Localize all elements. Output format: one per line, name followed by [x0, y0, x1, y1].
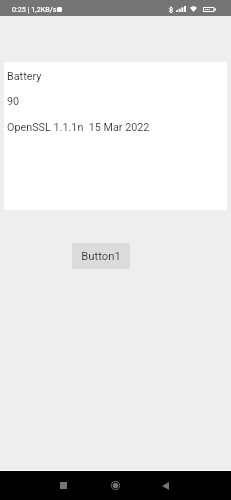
- staticText: OpenSSL 1.1.1n 15 Mar 2022: [7, 121, 150, 134]
- staticText: 0:25 | 1,2KB/s: [12, 5, 57, 13]
- button[interactable]: Recents: [49, 471, 78, 500]
- button[interactable]: Button1: [72, 243, 130, 269]
- staticText: Battery: [7, 70, 42, 83]
- staticText: 90: [7, 95, 20, 108]
- staticText: Button1: [81, 250, 121, 263]
- button[interactable]: Back: [151, 471, 180, 500]
- button[interactable]: Home: [101, 471, 130, 500]
